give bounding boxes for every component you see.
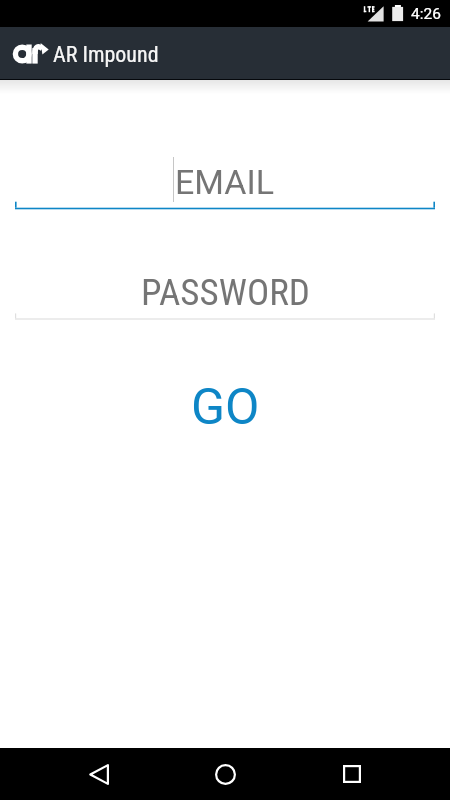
- staticText: EMAIL: [175, 162, 275, 202]
- staticText: PASSWORD: [141, 271, 310, 314]
- button[interactable]: Back: [62, 748, 135, 800]
- button[interactable]: PASSWORD: [0, 266, 450, 318]
- button[interactable]: GO: [0, 378, 450, 434]
- staticText: AR Impound: [53, 42, 159, 68]
- staticText: 4:26: [411, 5, 441, 23]
- button[interactable]: Recent apps: [315, 748, 388, 800]
- staticText: GO: [191, 378, 260, 434]
- button[interactable]: Home: [189, 748, 262, 800]
- button[interactable]: EMAIL: [0, 150, 450, 208]
